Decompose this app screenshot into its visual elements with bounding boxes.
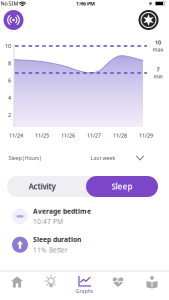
button[interactable]: Tips: [34, 270, 67, 294]
staticText: 11/28: [113, 132, 127, 139]
staticText: Last week: [90, 154, 115, 162]
staticText: 11% Better: [33, 245, 68, 254]
staticText: 10:47 PM: [33, 217, 63, 226]
staticText: min: [153, 73, 162, 80]
button[interactable]: Average bedtime: [0, 202, 169, 230]
staticText: 11/27: [87, 132, 101, 139]
button[interactable]: Time range: [86, 151, 150, 165]
button[interactable]: Home: [0, 270, 33, 294]
staticText: Activity: [28, 181, 55, 192]
staticText: 2: [8, 111, 11, 119]
staticText: Sleep duration: [33, 235, 81, 244]
button[interactable]: Health: [101, 270, 134, 294]
staticText: No SIM: [0, 0, 18, 7]
button[interactable]: Profile: [138, 10, 158, 30]
staticText: Average bedtime: [33, 207, 91, 216]
button[interactable]: Community: [135, 270, 168, 294]
button[interactable]: Graphs: [68, 273, 101, 297]
staticText: 11/24: [9, 132, 23, 139]
staticText: Sleep: [111, 181, 132, 192]
button[interactable]: Live session: [3, 10, 23, 30]
button[interactable]: Activity: [4, 176, 79, 197]
staticText: 10: [5, 42, 11, 50]
staticText: 8: [8, 60, 11, 67]
staticText: 1:46 PM: [76, 0, 95, 7]
staticText: 7: [156, 66, 159, 73]
staticText: 11/26: [61, 132, 75, 139]
staticText: 4: [8, 94, 11, 101]
staticText: max: [152, 46, 163, 53]
staticText: 11/25: [35, 132, 49, 139]
staticText: Sleep (Hours): [8, 154, 41, 162]
staticText: 6: [8, 77, 11, 84]
staticText: 11/29: [139, 132, 153, 139]
button[interactable]: Sleep: [86, 176, 158, 197]
button[interactable]: Sleep duration: [0, 231, 169, 259]
staticText: Graphs: [75, 287, 93, 295]
staticText: 10: [155, 39, 161, 46]
